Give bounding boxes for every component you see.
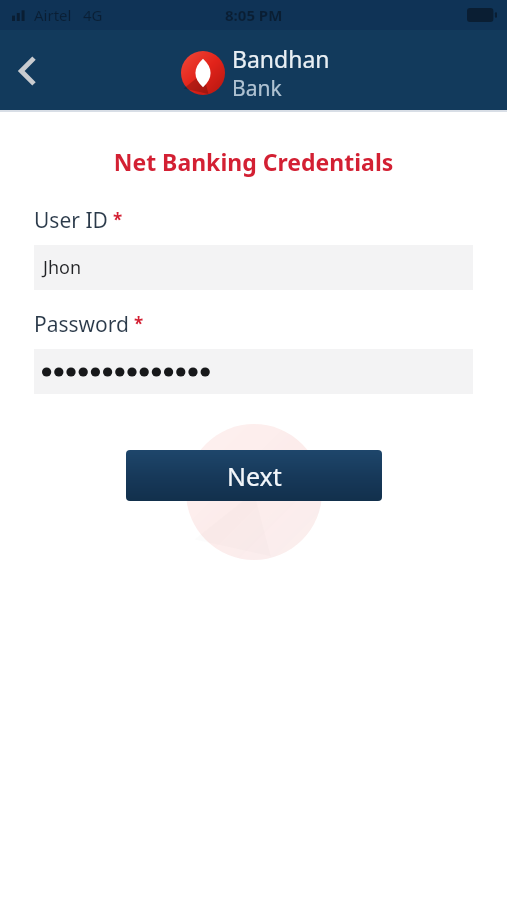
- staticText: 4G: [83, 5, 103, 25]
- staticText: *: [113, 208, 123, 231]
- button[interactable]: [34, 349, 473, 394]
- staticText: Airtel: [34, 5, 72, 25]
- staticText: *: [134, 312, 144, 335]
- button[interactable]: Back: [0, 43, 56, 99]
- staticText: Bank: [232, 74, 282, 103]
- staticText: 8:05 PM: [225, 5, 283, 25]
- staticText: Bandhan: [232, 43, 330, 74]
- staticText: Password: [34, 310, 129, 339]
- staticText: Net Banking Credentials: [0, 146, 507, 177]
- staticText: Jhon: [43, 255, 82, 280]
- button[interactable]: Next: [126, 450, 382, 501]
- button[interactable]: Jhon: [34, 245, 473, 290]
- staticText: Next: [227, 459, 282, 493]
- staticText: User ID: [34, 206, 108, 235]
